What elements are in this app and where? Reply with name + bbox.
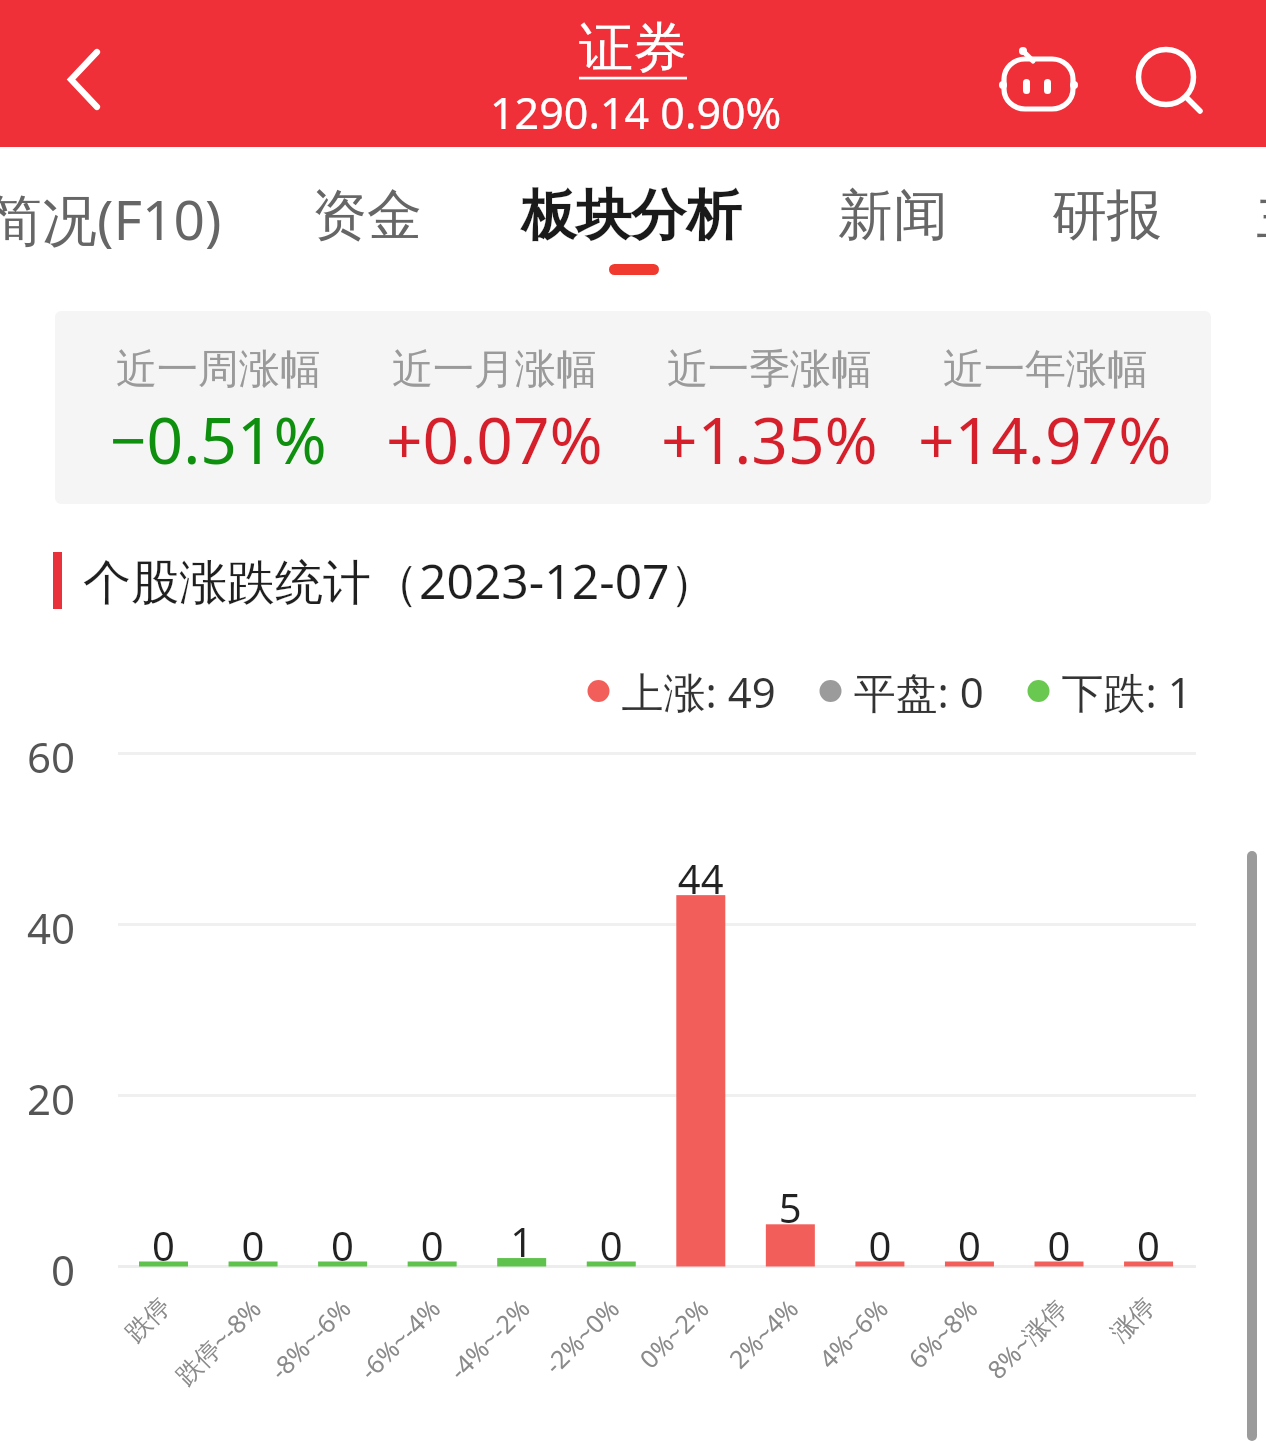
staticText: 证券 <box>579 14 687 82</box>
staticText: 主力 <box>1256 181 1266 250</box>
button[interactable]: 个股涨跌统计（2023-12-07） <box>53 548 718 612</box>
staticText: +14.97% <box>918 396 1172 483</box>
staticText: 简况(F10) <box>0 181 222 256</box>
staticText: 近一季涨幅 <box>667 344 872 396</box>
button[interactable]: 简况(F10) <box>0 147 234 295</box>
staticText: 资金 <box>312 181 422 250</box>
button[interactable]: 资金 <box>239 147 495 295</box>
staticText: 研报 <box>1052 181 1162 250</box>
button[interactable]: 板块分析 <box>503 147 759 295</box>
button[interactable]: Back <box>0 0 150 147</box>
staticText: 近一周涨幅 <box>116 344 321 396</box>
staticText: −0.51% <box>110 396 327 483</box>
staticText: 1290.14 0.90% <box>490 83 782 142</box>
staticText: 板块分析 <box>521 181 741 250</box>
button[interactable]: 研报 <box>1007 147 1207 295</box>
button[interactable]: Search <box>1118 25 1214 121</box>
button[interactable]: 近一周涨幅 <box>55 311 1211 504</box>
staticText: 个股涨跌统计（2023-12-07） <box>83 548 718 612</box>
button[interactable]: 新闻 <box>765 147 1021 295</box>
button[interactable]: 主力 <box>1211 147 1266 295</box>
staticText: 近一月涨幅 <box>392 344 597 396</box>
staticText: +1.35% <box>661 396 878 483</box>
staticText: +0.07% <box>386 396 603 483</box>
staticText: 近一年涨幅 <box>943 344 1148 396</box>
button[interactable]: AI assistant <box>990 25 1086 121</box>
staticText: 新闻 <box>838 181 948 250</box>
